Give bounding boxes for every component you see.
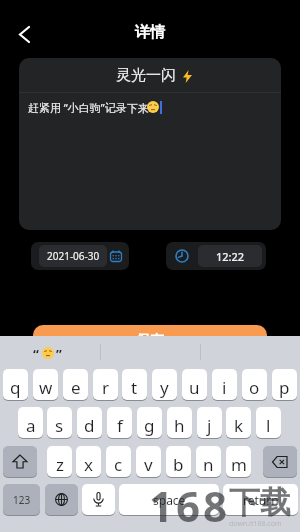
staticText: x: [84, 453, 93, 476]
staticText: j: [207, 414, 212, 437]
staticText: b: [173, 453, 184, 476]
staticText: 赶紧用 “小白驹”记录下来: [28, 100, 149, 115]
staticText: 168: [149, 477, 231, 532]
staticText: “: [33, 345, 39, 363]
button[interactable]: 保存: [33, 325, 267, 355]
staticText: d: [84, 414, 95, 437]
staticText: g: [144, 414, 155, 437]
button[interactable]: e: [63, 369, 88, 400]
staticText: o: [249, 376, 260, 399]
staticText: z: [56, 453, 64, 476]
staticText: l: [266, 414, 271, 437]
button[interactable]: [82, 484, 115, 515]
button[interactable]: g: [137, 407, 162, 438]
staticText: 12:22: [216, 249, 245, 264]
staticText: 下载: [229, 483, 291, 522]
staticText: w: [39, 376, 53, 399]
button[interactable]: a: [18, 407, 43, 438]
button[interactable]: space: [119, 484, 219, 515]
button[interactable]: return: [223, 484, 298, 515]
staticText: ”: [56, 345, 62, 363]
staticText: y: [160, 376, 169, 399]
staticText: i: [222, 376, 227, 399]
staticText: p: [279, 376, 290, 399]
button[interactable]: 灵光一闪: [19, 58, 281, 230]
staticText: n: [203, 453, 214, 476]
staticText: 2021-06-30: [47, 249, 100, 263]
button[interactable]: [45, 484, 78, 515]
button[interactable]: s: [47, 407, 72, 438]
button[interactable]: m: [226, 446, 251, 477]
staticText: f: [117, 414, 123, 437]
staticText: 保存: [136, 332, 164, 350]
button[interactable]: u: [182, 369, 207, 400]
button[interactable]: t: [122, 369, 147, 400]
button[interactable]: 2021-06-30: [31, 242, 129, 270]
staticText: u: [189, 376, 200, 399]
button[interactable]: l: [256, 407, 281, 438]
button[interactable]: p: [272, 369, 297, 400]
staticText: down.it168.com: [229, 519, 282, 529]
button[interactable]: c: [106, 446, 131, 477]
button[interactable]: y: [152, 369, 177, 400]
staticText: a: [26, 414, 36, 437]
button[interactable]: i: [212, 369, 237, 400]
button[interactable]: [3, 446, 37, 477]
button[interactable]: r: [93, 369, 118, 400]
button[interactable]: 12:22: [166, 242, 266, 270]
button[interactable]: k: [226, 407, 251, 438]
staticText: 灵光一闪: [116, 66, 176, 85]
button[interactable]: f: [107, 407, 132, 438]
button[interactable]: b: [166, 446, 191, 477]
button[interactable]: 123: [3, 484, 40, 515]
button[interactable]: o: [242, 369, 267, 400]
button[interactable]: d: [77, 407, 102, 438]
staticText: s: [55, 414, 64, 437]
staticText: h: [174, 414, 185, 437]
staticText: 详情: [0, 23, 300, 42]
staticText: space: [153, 492, 186, 508]
button[interactable]: j: [197, 407, 222, 438]
button[interactable]: z: [47, 446, 72, 477]
button[interactable]: x: [76, 446, 101, 477]
button[interactable]: w: [33, 369, 58, 400]
staticText: c: [114, 453, 123, 476]
button[interactable]: [12, 22, 36, 46]
staticText: 123: [13, 493, 31, 507]
staticText: k: [234, 414, 244, 437]
button[interactable]: n: [196, 446, 221, 477]
staticText: return: [243, 492, 279, 508]
staticText: t: [131, 376, 138, 399]
button[interactable]: [263, 446, 297, 477]
button[interactable]: v: [136, 446, 161, 477]
staticText: r: [102, 376, 110, 399]
staticText: m: [231, 453, 247, 476]
staticText: e: [71, 376, 81, 399]
button[interactable]: q: [3, 369, 28, 400]
button[interactable]: h: [167, 407, 192, 438]
staticText: q: [10, 376, 21, 399]
staticText: v: [144, 453, 153, 476]
